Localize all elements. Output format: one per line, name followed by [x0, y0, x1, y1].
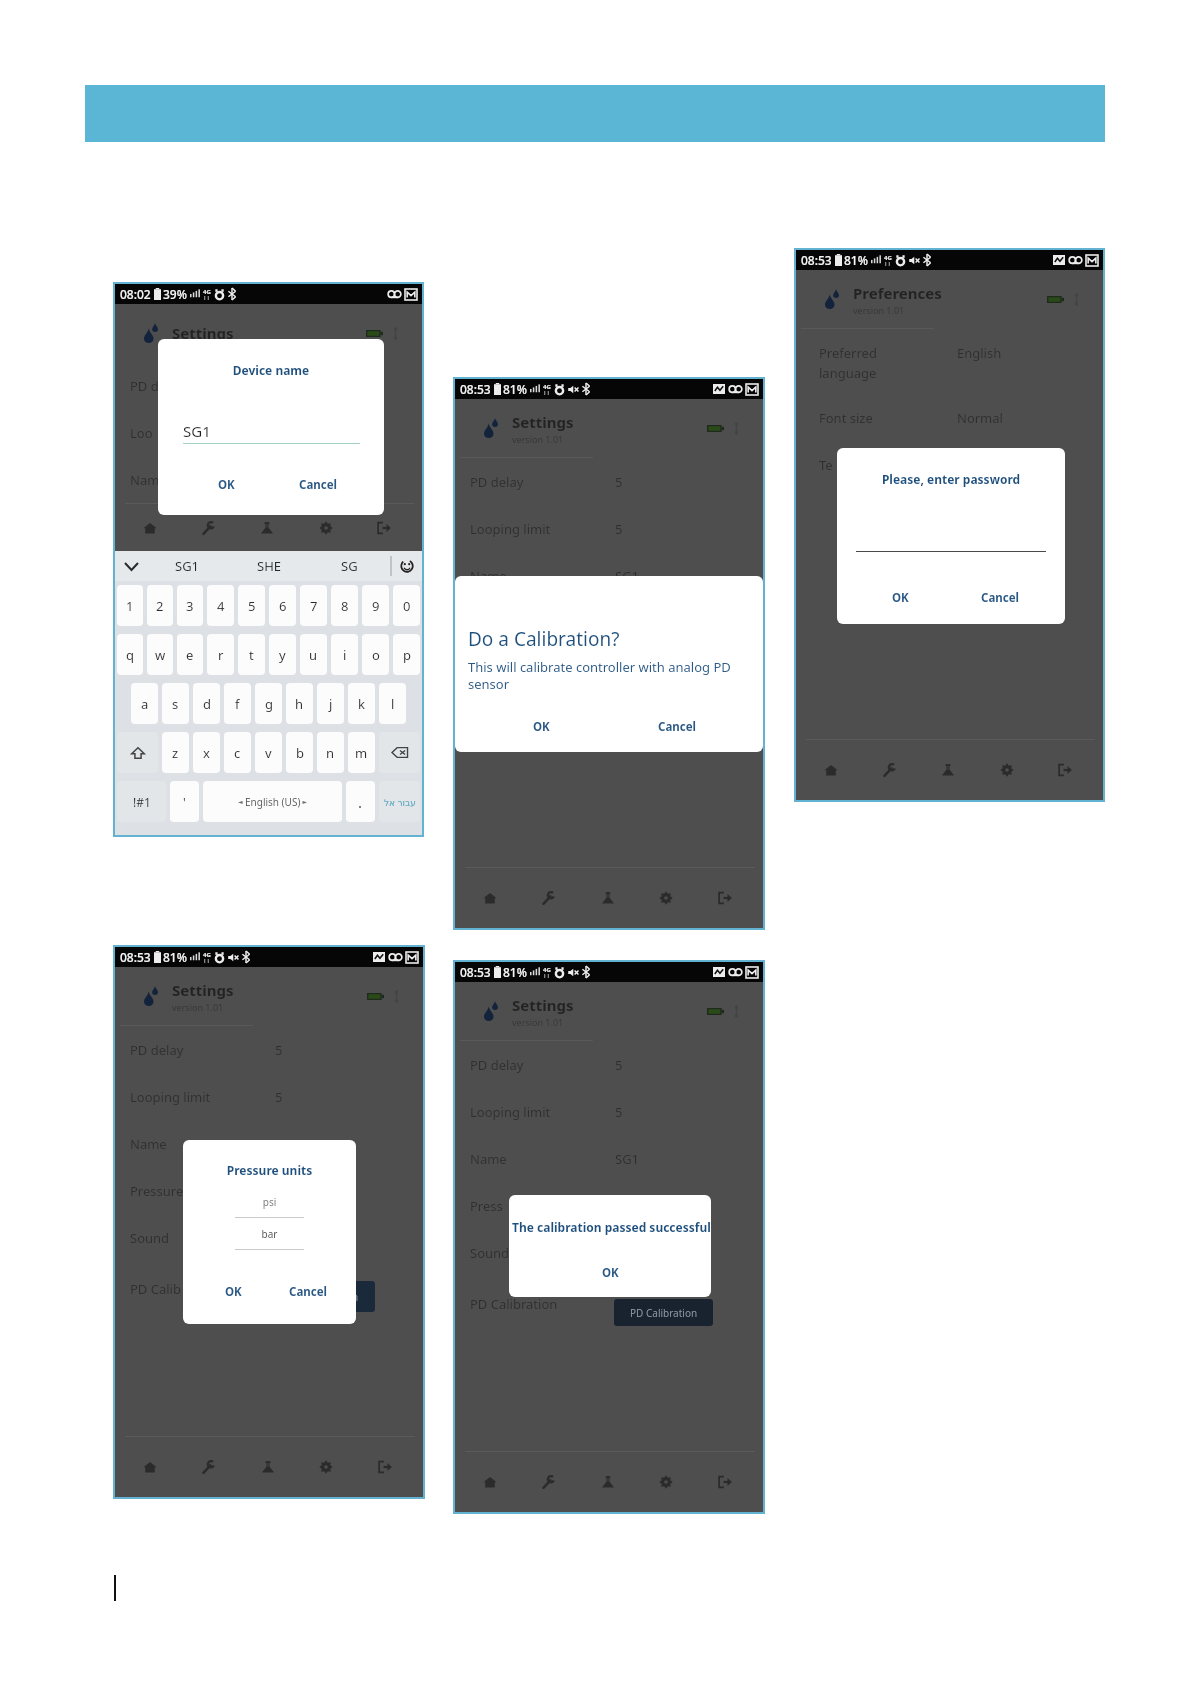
button[interactable]: OK — [196, 1278, 270, 1306]
button[interactable]: 7 — [300, 585, 327, 626]
button[interactable]: Tools — [187, 506, 231, 550]
button[interactable]: m — [348, 732, 375, 773]
button[interactable]: v — [255, 732, 282, 773]
button[interactable]: Log out — [1043, 748, 1087, 792]
button[interactable]: Preferred language — [819, 344, 1103, 394]
button[interactable]: r — [207, 634, 234, 675]
button[interactable]: x — [193, 732, 220, 773]
button[interactable]: Tools — [187, 1445, 231, 1489]
button[interactable]: Emoji — [392, 551, 422, 581]
button[interactable]: Font size — [819, 394, 1103, 441]
button[interactable]: Nam — [130, 456, 422, 503]
button[interactable]: Log out — [703, 876, 747, 920]
button[interactable]: Loo — [130, 409, 422, 456]
button[interactable]: g — [255, 683, 282, 724]
button[interactable]: Settings — [304, 1445, 348, 1489]
button[interactable]: Home — [809, 748, 853, 792]
button[interactable]: 0 — [393, 585, 420, 626]
button[interactable]: PD d — [130, 362, 422, 409]
button[interactable]: Tools — [527, 1460, 571, 1504]
button[interactable]: t — [238, 634, 265, 675]
button[interactable]: SG1 — [147, 551, 228, 581]
button[interactable]: Name — [470, 552, 763, 599]
button[interactable]: Settings — [644, 1460, 688, 1504]
button[interactable]: Lab — [926, 748, 970, 792]
button[interactable]: Log out — [363, 1445, 407, 1489]
button[interactable]: s — [162, 683, 189, 724]
button[interactable]: SHE — [228, 551, 309, 581]
button[interactable]: u — [300, 634, 327, 675]
button[interactable]: w — [147, 634, 173, 675]
button[interactable]: p — [393, 634, 420, 675]
button[interactable]: ◄ — [203, 781, 342, 822]
button[interactable]: a — [131, 683, 158, 724]
button[interactable]: Tools — [527, 876, 571, 920]
button[interactable]: c — [224, 732, 251, 773]
button[interactable]: Lab — [586, 1460, 630, 1504]
button[interactable]: . — [346, 781, 375, 822]
button[interactable]: OK — [180, 471, 272, 499]
button[interactable]: k — [348, 683, 375, 724]
button[interactable]: Looping limit — [470, 1088, 763, 1135]
button[interactable]: Settings — [644, 876, 688, 920]
button[interactable]: Tools — [868, 748, 912, 792]
button[interactable]: Log out — [703, 1460, 747, 1504]
button[interactable]: ' — [170, 781, 199, 822]
button[interactable]: Collapse keyboard — [115, 551, 147, 581]
button[interactable]: PD Calibration — [470, 1276, 763, 1331]
button[interactable]: e — [177, 634, 203, 675]
button[interactable]: PD Calib — [130, 1261, 423, 1316]
button[interactable]: o — [362, 634, 389, 675]
button[interactable]: Lab — [245, 506, 289, 550]
button[interactable]: Looping limit — [470, 505, 763, 552]
button[interactable]: q — [117, 634, 143, 675]
button[interactable]: Backspace — [379, 732, 420, 773]
button[interactable]: i — [331, 634, 358, 675]
button[interactable]: OK — [509, 1260, 711, 1286]
button[interactable]: Sound — [130, 1214, 423, 1261]
button[interactable]: n — [317, 732, 344, 773]
button[interactable]: Log out — [362, 506, 406, 550]
button[interactable]: Sound — [470, 1229, 763, 1276]
button[interactable]: עבור אל — [379, 781, 420, 822]
button[interactable]: Looping limit — [130, 1073, 423, 1120]
button[interactable]: PD Calibration — [275, 1281, 375, 1312]
button[interactable]: Name — [130, 1120, 423, 1167]
button[interactable]: !#1 — [117, 781, 166, 822]
button[interactable]: SG — [309, 551, 390, 581]
button[interactable]: 2 — [147, 585, 173, 626]
button[interactable]: 3 — [177, 585, 203, 626]
button[interactable]: j — [317, 683, 344, 724]
button[interactable]: h — [286, 683, 313, 724]
button[interactable]: Home — [468, 876, 512, 920]
button[interactable]: OK — [474, 713, 609, 741]
button[interactable]: f — [224, 683, 251, 724]
button[interactable]: Lab — [246, 1445, 290, 1489]
button[interactable]: Home — [128, 1445, 172, 1489]
button[interactable]: Home — [468, 1460, 512, 1504]
button[interactable]: PD Calibration — [614, 1299, 713, 1326]
button[interactable]: Home — [128, 506, 172, 550]
button[interactable]: 8 — [331, 585, 358, 626]
button[interactable]: Cancel — [272, 471, 364, 499]
button[interactable]: Settings — [304, 506, 348, 550]
button[interactable]: Cancel — [270, 1278, 345, 1306]
button[interactable]: Cancel — [609, 713, 745, 741]
button[interactable]: b — [286, 732, 313, 773]
button[interactable]: Settings — [985, 748, 1029, 792]
button[interactable]: l — [379, 683, 406, 724]
button[interactable]: y — [269, 634, 296, 675]
button[interactable]: 9 — [362, 585, 389, 626]
button[interactable]: z — [162, 732, 189, 773]
button[interactable]: Pressure — [130, 1167, 423, 1214]
button[interactable]: Press — [470, 1182, 763, 1229]
button[interactable]: 6 — [269, 585, 296, 626]
button[interactable]: 1 — [117, 585, 143, 626]
button[interactable]: Shift — [117, 732, 158, 773]
button[interactable]: 5 — [238, 585, 265, 626]
button[interactable]: d — [193, 683, 220, 724]
